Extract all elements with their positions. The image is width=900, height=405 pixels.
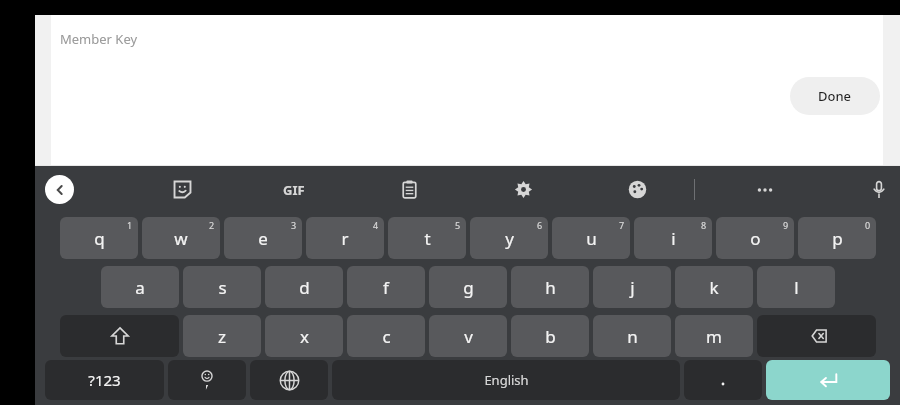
button[interactable]: j [593, 266, 671, 308]
staticText: f [383, 276, 389, 299]
button[interactable]: Space [332, 360, 680, 400]
button[interactable]: w [142, 217, 220, 259]
button[interactable]: k [675, 266, 753, 308]
staticText: English [484, 371, 529, 389]
staticText: 0 [865, 219, 871, 231]
staticText: e [258, 227, 268, 250]
button[interactable]: u [552, 217, 630, 259]
button[interactable]: f [347, 266, 425, 308]
button[interactable]: Symbols [45, 360, 164, 400]
staticText: h [545, 276, 556, 299]
staticText: y [505, 227, 514, 250]
button[interactable]: v [429, 315, 507, 357]
staticText: Done [818, 87, 852, 105]
staticText: o [750, 227, 761, 250]
button[interactable]: Clipboard [387, 166, 431, 213]
button[interactable]: Backspace [757, 315, 876, 357]
button[interactable]: Settings [501, 166, 545, 213]
staticText: c [382, 325, 391, 348]
staticText: 8 [701, 219, 707, 231]
button[interactable]: s [183, 266, 261, 308]
staticText: w [174, 227, 188, 250]
staticText: j [630, 276, 635, 299]
staticText: k [709, 276, 719, 299]
staticText: p [832, 227, 843, 250]
button[interactable]: l [757, 266, 835, 308]
button[interactable]: Shift [60, 315, 179, 357]
staticText: a [135, 276, 145, 299]
button[interactable]: y [470, 217, 548, 259]
button[interactable]: t [388, 217, 466, 259]
button[interactable]: GIF [269, 166, 319, 213]
button[interactable]: More options [743, 166, 787, 213]
button[interactable]: Back [45, 175, 74, 204]
button[interactable]: c [347, 315, 425, 357]
staticText: z [218, 325, 226, 348]
staticText: GIF [283, 181, 305, 199]
staticText: 1 [127, 219, 133, 231]
staticText: s [218, 276, 227, 299]
button[interactable]: z [183, 315, 261, 357]
staticText: 5 [455, 219, 461, 231]
button[interactable]: a [101, 266, 179, 308]
staticText: r [341, 227, 349, 250]
button[interactable]: q [60, 217, 138, 259]
button[interactable]: d [265, 266, 343, 308]
button[interactable]: Done [790, 77, 880, 115]
staticText: b [545, 325, 556, 348]
staticText: ?123 [88, 370, 121, 390]
button[interactable]: Enter [766, 360, 890, 400]
staticText: m [706, 325, 722, 348]
staticText: n [627, 325, 638, 348]
button[interactable]: Change language [250, 360, 328, 400]
staticText: 4 [373, 219, 379, 231]
staticText: 3 [291, 219, 297, 231]
button[interactable]: r [306, 217, 384, 259]
staticText: t [424, 227, 431, 250]
staticText: 2 [209, 219, 215, 231]
staticText: u [586, 227, 597, 250]
staticText: Member Key [60, 30, 138, 48]
staticText: 7 [619, 219, 625, 231]
button[interactable]: Voice input [857, 166, 900, 213]
staticText: x [300, 325, 309, 348]
button[interactable]: x [265, 315, 343, 357]
button[interactable]: h [511, 266, 589, 308]
staticText: 9 [783, 219, 789, 231]
button[interactable]: Period [684, 360, 762, 400]
staticText: i [671, 227, 676, 250]
staticText: g [463, 276, 474, 299]
button[interactable]: Theme [615, 166, 659, 213]
button[interactable]: m [675, 315, 753, 357]
button[interactable]: o [716, 217, 794, 259]
staticText: d [299, 276, 310, 299]
button[interactable]: Emoji and comma [168, 360, 246, 400]
button[interactable]: n [593, 315, 671, 357]
button[interactable]: p [798, 217, 876, 259]
button[interactable]: e [224, 217, 302, 259]
staticText: l [794, 276, 799, 299]
staticText: q [94, 227, 105, 250]
button[interactable]: g [429, 266, 507, 308]
button[interactable]: i [634, 217, 712, 259]
button[interactable]: b [511, 315, 589, 357]
button[interactable]: Stickers [160, 166, 204, 213]
staticText: v [464, 325, 473, 348]
staticText: 6 [537, 219, 543, 231]
